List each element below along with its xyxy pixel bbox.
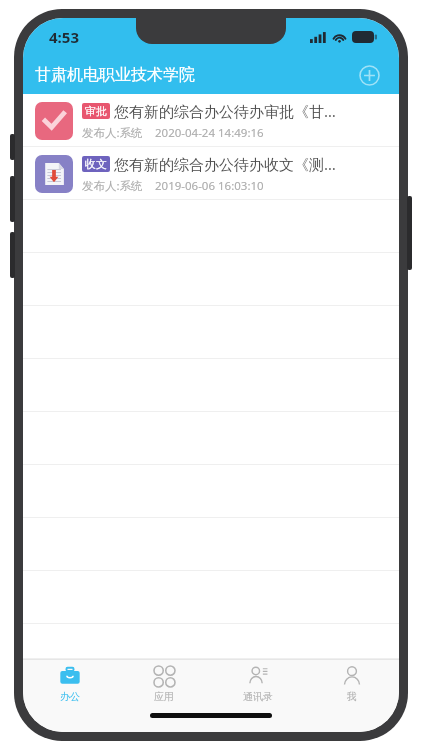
staticText: 发布人:系统 <box>82 178 143 194</box>
staticText: 甘肃机电职业技术学院 <box>35 65 195 85</box>
button[interactable]: 应用 <box>117 660 211 708</box>
staticText: 应用 <box>154 690 174 703</box>
staticText: 审批 <box>85 104 107 118</box>
staticText: 2019-06-06 16:03:10 <box>155 178 264 194</box>
button[interactable]: 审批 <box>23 94 399 147</box>
staticText: 4:53 <box>49 27 79 47</box>
button[interactable]: Add <box>353 59 385 91</box>
staticText: 我 <box>347 690 357 703</box>
staticText: 通讯录 <box>243 690 273 703</box>
staticText: 2020-04-24 14:49:16 <box>155 125 264 141</box>
button[interactable]: 收文 <box>23 147 399 200</box>
button[interactable]: 办公 <box>23 660 117 708</box>
staticText: 您有新的综合办公待办收文《测… <box>114 154 336 174</box>
button[interactable]: 通讯录 <box>211 660 305 708</box>
staticText: 收文 <box>85 157 107 171</box>
staticText: 发布人:系统 <box>82 125 143 141</box>
button[interactable]: 我 <box>305 660 399 708</box>
staticText: 办公 <box>60 690 80 703</box>
staticText: 您有新的综合办公待办审批《甘… <box>114 101 336 121</box>
